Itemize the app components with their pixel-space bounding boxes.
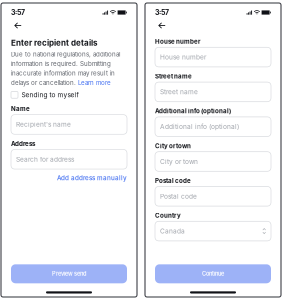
button[interactable]: Back bbox=[154, 20, 169, 31]
staticText: City or town bbox=[160, 157, 198, 165]
button[interactable]: Preview send bbox=[11, 264, 127, 283]
button[interactable]: Back bbox=[10, 20, 25, 31]
staticText: Name bbox=[11, 105, 30, 113]
staticText: Street name bbox=[160, 88, 198, 96]
staticText: 3:57 bbox=[11, 8, 25, 17]
staticText: Due to national regulations, additional … bbox=[11, 51, 120, 86]
staticText: Additional info (optional) bbox=[155, 107, 231, 115]
button[interactable]: House number bbox=[155, 47, 271, 67]
button[interactable]: Search for address bbox=[11, 149, 127, 169]
staticText: Postal code bbox=[155, 177, 191, 184]
staticText: Sending to myself bbox=[21, 91, 78, 99]
button[interactable]: Additional info (optional) bbox=[155, 117, 271, 136]
staticText: Additional info (optional) bbox=[160, 123, 239, 131]
button[interactable]: City or town bbox=[155, 152, 271, 171]
staticText: Country bbox=[155, 212, 181, 219]
button[interactable]: Street name bbox=[155, 82, 271, 102]
button[interactable]: Sending to myself bbox=[11, 91, 127, 98]
button[interactable]: Add address manually bbox=[57, 174, 127, 182]
staticText: Address bbox=[11, 140, 35, 147]
staticText: House number bbox=[160, 53, 206, 61]
staticText: Canada bbox=[160, 227, 185, 235]
staticText: Postal code bbox=[160, 192, 197, 200]
staticText: Enter recipient details bbox=[11, 38, 97, 48]
button[interactable]: Postal code bbox=[155, 186, 271, 206]
staticText: 3:57 bbox=[155, 8, 169, 17]
button[interactable]: Recipient's name bbox=[11, 115, 127, 134]
staticText: City or town bbox=[155, 142, 191, 150]
staticText: Preview send bbox=[52, 270, 86, 277]
staticText: House number bbox=[155, 38, 200, 45]
staticText: Continue bbox=[202, 270, 224, 277]
staticText: Search for address bbox=[16, 155, 74, 163]
staticText: Recipient's name bbox=[16, 120, 71, 128]
staticText: Street name bbox=[155, 73, 192, 80]
staticText: Add address manually bbox=[57, 174, 127, 182]
button[interactable]: Canada bbox=[155, 221, 271, 241]
button[interactable]: Due to national regulations, additional … bbox=[11, 51, 120, 86]
button[interactable]: Continue bbox=[155, 264, 271, 283]
